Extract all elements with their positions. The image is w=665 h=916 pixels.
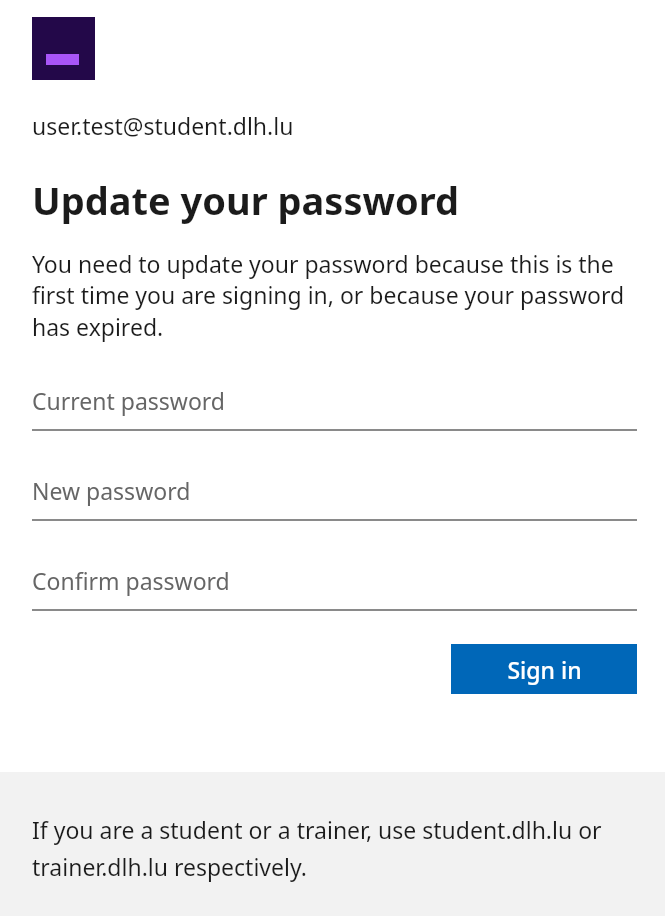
staticText: user.test@student.dlh.lu xyxy=(32,110,294,141)
staticText: Sign in xyxy=(507,654,582,685)
button[interactable]: New password xyxy=(32,461,637,521)
staticText: Update your password xyxy=(32,174,460,226)
staticText: Current password xyxy=(32,385,226,416)
staticText: New password xyxy=(32,475,191,506)
staticText: If you are a student or a trainer, use s… xyxy=(32,814,637,883)
staticText: Confirm password xyxy=(32,565,230,596)
button[interactable]: Current password xyxy=(32,371,637,431)
staticText: You need to update your password because… xyxy=(32,248,637,343)
button[interactable]: Confirm password xyxy=(32,551,637,611)
button[interactable]: Sign in xyxy=(451,644,637,694)
